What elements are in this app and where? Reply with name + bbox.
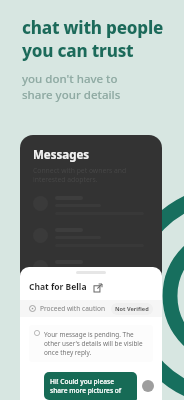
staticText: you can trust: [22, 39, 134, 62]
staticText: Proceed with caution: [40, 304, 106, 313]
staticText: Messages: [33, 147, 90, 163]
staticText: chat with people: [22, 16, 164, 39]
staticText: share your details: [22, 87, 121, 103]
button[interactable]: Proceed with caution: [20, 300, 162, 317]
staticText: Not Verified: [115, 305, 149, 313]
staticText: Chat for Bella: [29, 281, 87, 293]
staticText: Hi! Could you please share more pictures…: [50, 377, 131, 395]
staticText: Connect with pet owners and interested a…: [33, 166, 152, 184]
button[interactable]: Hi! Could you please share more pictures…: [44, 372, 137, 400]
staticText: you don't have to: [22, 71, 118, 87]
staticText: Your message is pending. The other user'…: [44, 330, 148, 357]
button[interactable]: Open listing: [92, 282, 103, 293]
